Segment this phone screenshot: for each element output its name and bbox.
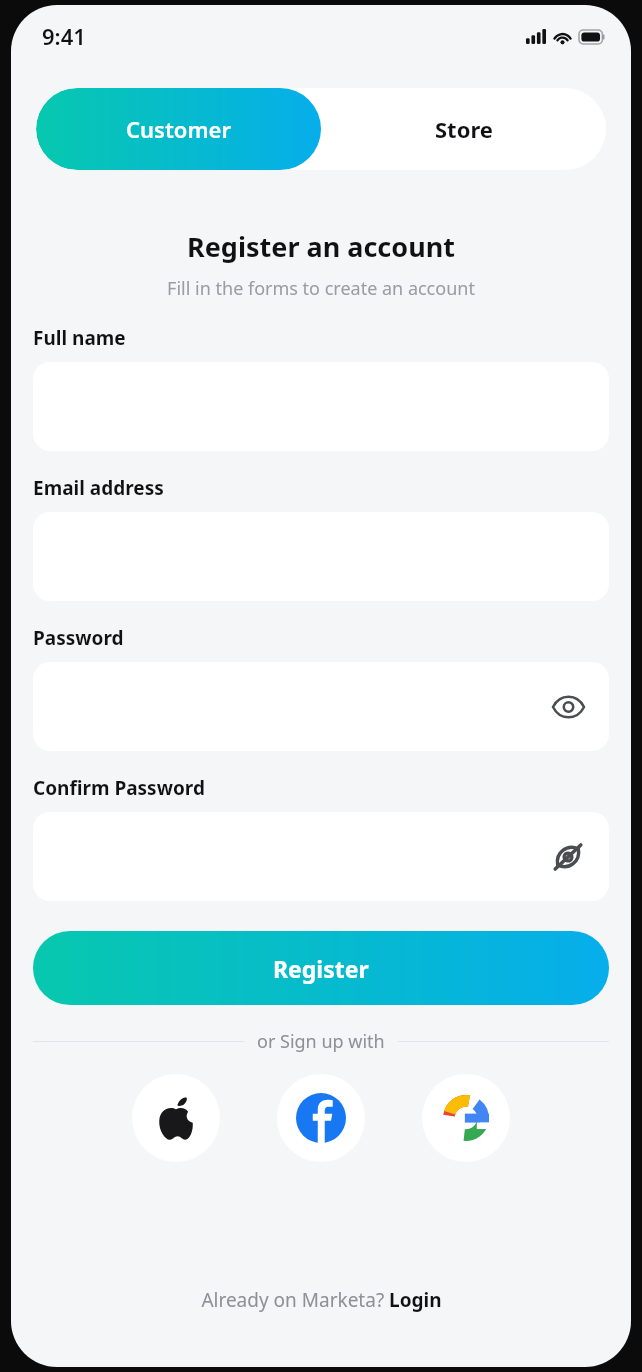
staticText: Email address xyxy=(33,475,164,501)
staticText: Already on Marketa? Login xyxy=(201,1287,442,1313)
button[interactable]: Show password xyxy=(33,662,609,751)
staticText: Register xyxy=(273,953,369,984)
button[interactable]: Show password xyxy=(545,684,591,730)
staticText: Full name xyxy=(33,325,126,351)
staticText: Confirm Password xyxy=(33,775,205,801)
button[interactable]: Already on Marketa? Login xyxy=(11,1287,631,1313)
button[interactable]: Sign up with Google xyxy=(422,1074,510,1162)
staticText: 9:41 xyxy=(42,21,86,51)
button[interactable]: Sign up with Apple xyxy=(132,1074,220,1162)
staticText: Register an account xyxy=(11,228,631,265)
button[interactable]: Store xyxy=(321,88,606,170)
button[interactable]: Sign up with Facebook xyxy=(277,1074,365,1162)
staticText: or Sign up with xyxy=(257,1029,385,1054)
staticText: Store xyxy=(435,114,493,144)
staticText: Fill in the forms to create an account xyxy=(11,276,631,301)
staticText: Customer xyxy=(126,114,231,144)
button[interactable]: Hide password xyxy=(33,812,609,901)
staticText: Password xyxy=(33,625,124,651)
button[interactable]: Hide password xyxy=(545,834,591,880)
button[interactable]: Register xyxy=(33,931,609,1005)
button[interactable]: Customer xyxy=(36,88,321,170)
